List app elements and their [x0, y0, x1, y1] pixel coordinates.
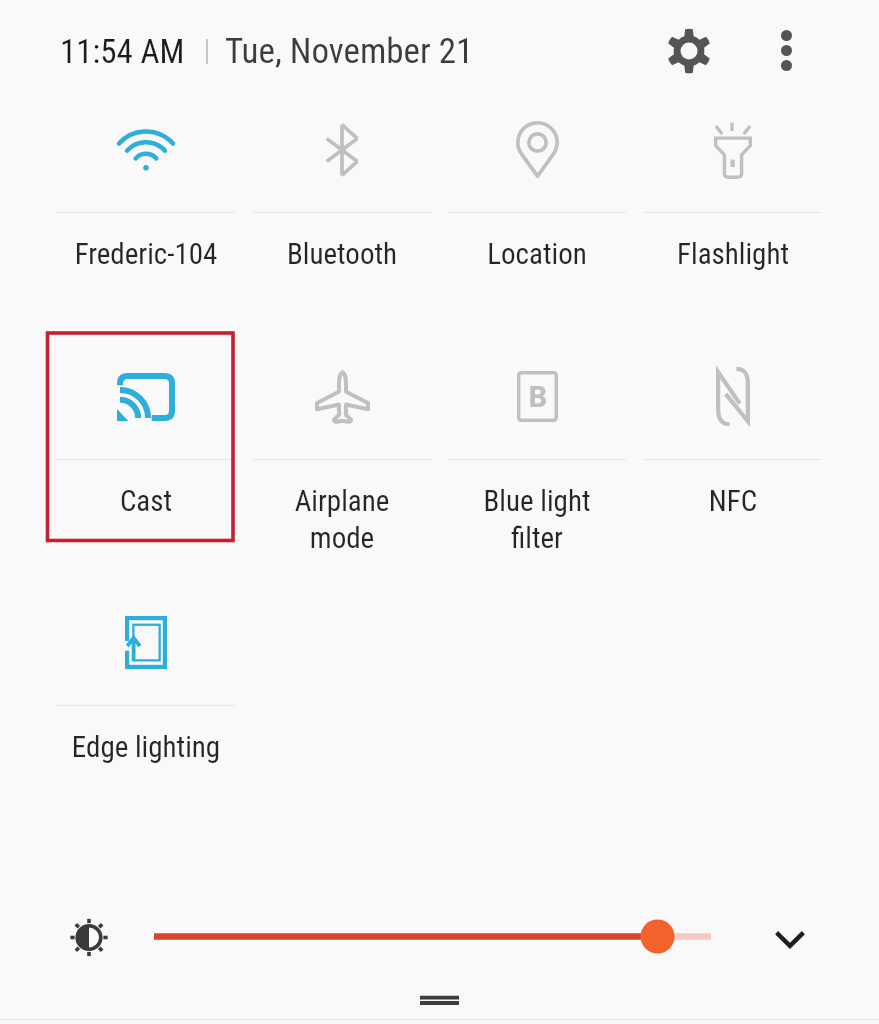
button[interactable]: Airplane mode — [244, 354, 440, 544]
button[interactable]: Expand quick settings — [757, 907, 823, 973]
button[interactable]: Home — [0, 986, 879, 1010]
button[interactable]: Settings — [655, 17, 723, 85]
button[interactable]: Location — [439, 107, 635, 297]
staticText: Edge lighting — [48, 730, 244, 764]
button[interactable]: Brightness slider — [140, 918, 725, 956]
staticText: Bluetooth — [244, 237, 440, 271]
staticText: B — [528, 376, 548, 415]
button[interactable]: Flashlight — [635, 107, 831, 297]
staticText: Airplane mode — [244, 484, 440, 555]
staticText: Blue light filter — [439, 484, 635, 555]
button[interactable]: More options — [756, 20, 816, 80]
button[interactable]: Brightness — [56, 904, 121, 970]
staticText: Location — [439, 237, 635, 271]
button[interactable]: Frederic-104 — [48, 107, 244, 297]
staticText: Cast — [48, 484, 244, 518]
button[interactable]: Bluetooth — [244, 107, 440, 297]
staticText: Frederic-104 — [48, 237, 244, 271]
staticText: Tue, November 21 — [225, 31, 474, 72]
staticText: 11:54 AM — [60, 32, 185, 71]
button[interactable]: Cast — [48, 354, 244, 544]
button[interactable]: NFC — [635, 354, 831, 544]
button[interactable]: B — [439, 354, 635, 544]
staticText: Flashlight — [635, 237, 831, 271]
button[interactable]: Edge lighting — [48, 600, 244, 790]
staticText: NFC — [635, 484, 831, 518]
